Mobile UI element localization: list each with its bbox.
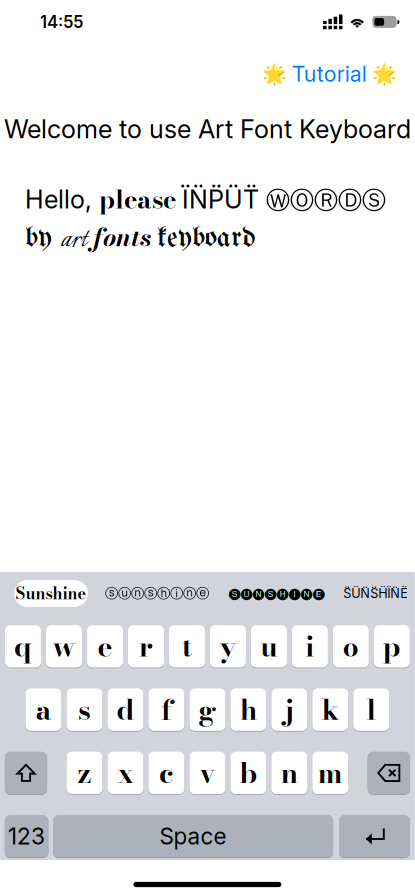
staticText: d [116,688,134,731]
button[interactable]: Delete [368,751,410,795]
staticText: ⓢⓤⓝⓢⓗⓘⓝⓔ [105,585,209,602]
button[interactable]: Space [53,814,333,858]
staticText: j [285,688,294,731]
staticText: g [198,688,216,731]
button[interactable]: q [5,624,41,668]
staticText: m [318,752,343,794]
button[interactable]: b [230,751,266,795]
button[interactable]: o [333,624,369,668]
staticText: r [139,625,153,668]
button[interactable]: e [87,624,123,668]
button[interactable]: ⓢⓤⓝⓢⓗⓘⓝⓔ [101,580,213,607]
button[interactable]: z [66,751,102,795]
button[interactable]: g [189,688,225,731]
button[interactable]: w [46,624,82,668]
staticText: c [159,752,174,794]
staticText: Tutorial [292,61,367,87]
button[interactable]: h [230,688,266,731]
button[interactable]: l [353,688,389,731]
staticText: 🅢🅤🅝🅢🅗🅘🅝🅔 [229,588,325,599]
button[interactable]: v [189,751,225,795]
button[interactable]: m [312,751,348,795]
staticText: 🌟 [262,62,287,86]
staticText: Welcome to use Art Font Keyboard [4,114,411,144]
button[interactable]: u [251,624,287,668]
staticText: w [52,625,75,668]
button[interactable]: Numbers [5,814,48,858]
button[interactable]: p [374,624,410,668]
staticText: z [77,752,91,794]
button[interactable]: i [292,624,328,668]
staticText: Space [160,822,227,850]
button[interactable]: k [312,688,348,731]
staticText: k [321,688,339,731]
staticText: a [35,688,51,731]
button[interactable]: r [128,624,164,668]
button[interactable]: n [271,751,307,795]
button[interactable]: s [66,688,102,731]
staticText: n [281,752,298,794]
staticText: i [305,625,314,668]
staticText: 🌟 [372,62,397,86]
staticText: 123 [8,822,45,850]
staticText: q [14,625,32,668]
staticText: u [260,625,277,668]
staticText: b [239,752,257,794]
button[interactable]: c [148,751,184,795]
staticText: e [97,625,112,668]
button[interactable]: d [107,688,143,731]
staticText: p [383,625,401,668]
staticText: Sunshine [15,581,86,606]
button[interactable]: 🌟 [256,56,403,92]
button[interactable]: S̈ÜN̈S̈ḦÏN̈Ë [341,580,411,607]
staticText: v [199,752,215,794]
button[interactable]: f [148,688,184,731]
staticText: t [182,625,192,668]
staticText: Hello, please ÏN̈P̈ÜT̈ ⓌⓄⓇⒹⓈ by art font… [25,180,386,261]
staticText: y [219,625,236,668]
button[interactable]: x [107,751,143,795]
button[interactable]: y [210,624,246,668]
button[interactable]: t [169,624,205,668]
button[interactable]: 🅢🅤🅝🅢🅗🅘🅝🅔 [226,580,328,607]
staticText: o [343,625,359,668]
button[interactable]: j [271,688,307,731]
staticText: 14:55 [40,12,83,32]
button[interactable]: Sunshine [14,580,88,607]
staticText: s [78,688,91,731]
button[interactable]: Shift [5,751,47,795]
staticText: h [240,688,257,731]
staticText: S̈ÜN̈S̈ḦÏN̈Ë [343,586,408,601]
staticText: x [117,752,133,794]
button[interactable]: Return [339,814,410,858]
staticText: l [366,688,376,731]
button[interactable]: a [25,688,61,731]
staticText: f [161,688,172,731]
